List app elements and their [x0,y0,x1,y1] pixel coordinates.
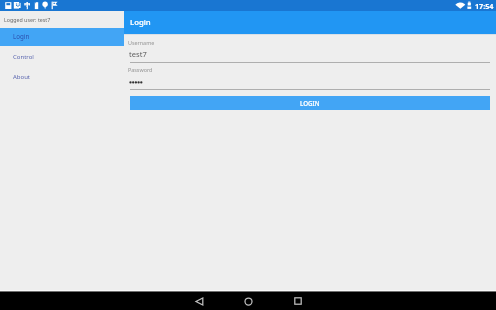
button[interactable]: Control [0,47,124,67]
staticText: Login [13,32,30,40]
button[interactable]: Home [239,292,257,310]
button[interactable]: Recent apps [289,292,307,310]
staticText: Logged user: test7 [4,16,51,23]
button[interactable]: LOGIN [130,96,490,110]
button[interactable]: Back [190,292,208,310]
staticText: Username [128,39,155,46]
staticText: test7 [129,49,147,59]
staticText: 17:54 [475,1,494,11]
staticText: Password [128,66,153,73]
staticText: About [13,73,31,81]
staticText: LOGIN [300,99,320,107]
button[interactable]: About [0,67,124,87]
staticText: Login [130,17,151,28]
button[interactable]: Login [0,28,124,46]
staticText: Control [13,53,34,61]
